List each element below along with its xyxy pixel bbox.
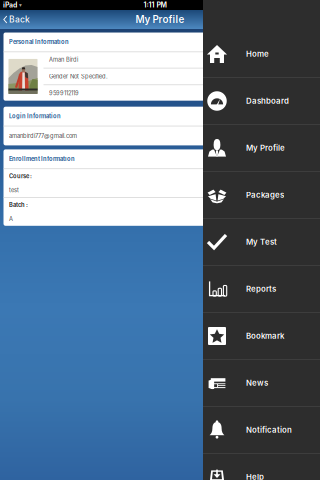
staticText: amanbirdi777@gmail.com: [9, 132, 77, 139]
staticText: Notification: [246, 425, 292, 435]
staticText: News: [246, 378, 268, 388]
button[interactable]: Dashboard: [203, 78, 320, 124]
staticText: Packages: [246, 190, 284, 200]
button[interactable]: News: [203, 360, 320, 406]
staticText: My Profile: [246, 143, 285, 153]
staticText: Dashboard: [246, 96, 289, 106]
staticText: My Test: [246, 237, 277, 247]
staticText: iPad: [3, 1, 17, 9]
staticText: Login Information: [9, 113, 61, 120]
button[interactable]: Home: [203, 31, 320, 77]
button[interactable]: Notification: [203, 407, 320, 453]
staticText: ▾: [17, 2, 22, 8]
staticText: 1:11 PM: [143, 1, 166, 9]
staticText: Home: [246, 49, 269, 59]
staticText: My Profile: [135, 13, 184, 25]
staticText: Course :: [9, 173, 32, 179]
staticText: Back: [9, 14, 30, 25]
staticText: Gender Not Specified.: [49, 73, 108, 80]
staticText: test: [9, 187, 19, 193]
staticText: Bookmark: [246, 331, 284, 341]
staticText: A: [9, 215, 13, 222]
staticText: Personal Information: [9, 38, 69, 45]
staticText: Reports: [246, 284, 276, 294]
button[interactable]: My Test: [203, 219, 320, 265]
staticText: Aman Birdi: [49, 56, 78, 63]
button[interactable]: Back: [0, 10, 35, 29]
button[interactable]: Help: [203, 454, 320, 480]
button[interactable]: Bookmark: [203, 313, 320, 359]
staticText: 9599112119: [49, 90, 79, 97]
button[interactable]: Reports: [203, 266, 320, 312]
staticText: Batch :: [9, 201, 28, 208]
button[interactable]: Packages: [203, 172, 320, 218]
staticText: Help: [246, 472, 264, 480]
button[interactable]: My Profile: [203, 125, 320, 171]
staticText: Enrollment Information: [9, 155, 75, 162]
